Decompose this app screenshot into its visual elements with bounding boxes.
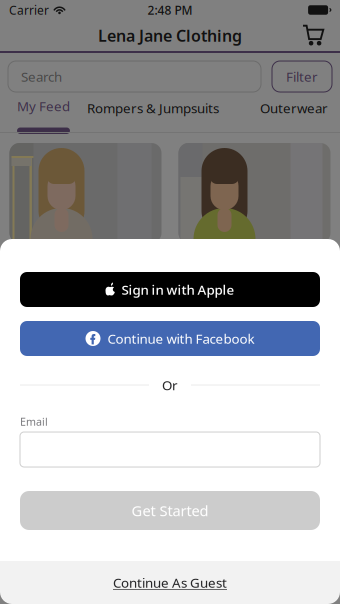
staticText: Or <box>162 376 178 394</box>
button[interactable]: Get Started <box>20 491 320 530</box>
staticText: Lena Jane Clothing <box>98 25 242 46</box>
staticText: Get Started <box>131 501 208 520</box>
button[interactable]: Continue As Guest <box>0 561 340 604</box>
button[interactable]: Continue with Facebook <box>20 321 320 356</box>
staticText: Filter <box>286 68 318 85</box>
staticText: Outerwear <box>260 99 328 117</box>
staticText: Carrier <box>9 2 49 18</box>
staticText: Email <box>20 414 48 429</box>
staticText: Search <box>21 68 62 85</box>
staticText: 2:48 PM <box>147 2 192 18</box>
staticText: Continue with Facebook <box>107 330 254 347</box>
staticText: Rompers & Jumpsuits <box>87 99 219 117</box>
staticText: My Feed <box>17 97 70 115</box>
staticText: Continue As Guest <box>113 574 227 591</box>
staticText: Sign in with Apple <box>121 281 234 298</box>
button[interactable]: Sign in with Apple <box>20 272 320 307</box>
